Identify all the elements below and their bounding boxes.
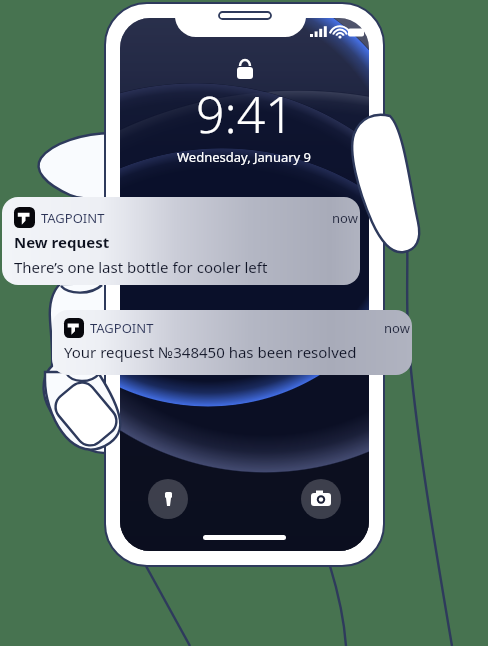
staticText: New request [14,232,110,252]
staticText: There’s one last bottle for cooler left [14,257,268,277]
staticText: Wednesday, January 9 [177,148,312,166]
button[interactable]: Camera [301,479,341,519]
staticText: TAGPOINT [90,319,154,337]
staticText: TAGPOINT [41,209,105,227]
button[interactable]: TAGPOINT [52,310,412,375]
staticText: now [332,209,358,227]
staticText: Your request №348450 has been resolved [64,342,357,362]
staticText: now [384,319,410,337]
button[interactable]: TAGPOINT [2,197,360,285]
button[interactable]: Flashlight [148,479,188,519]
staticText: 9:41 [196,80,294,148]
